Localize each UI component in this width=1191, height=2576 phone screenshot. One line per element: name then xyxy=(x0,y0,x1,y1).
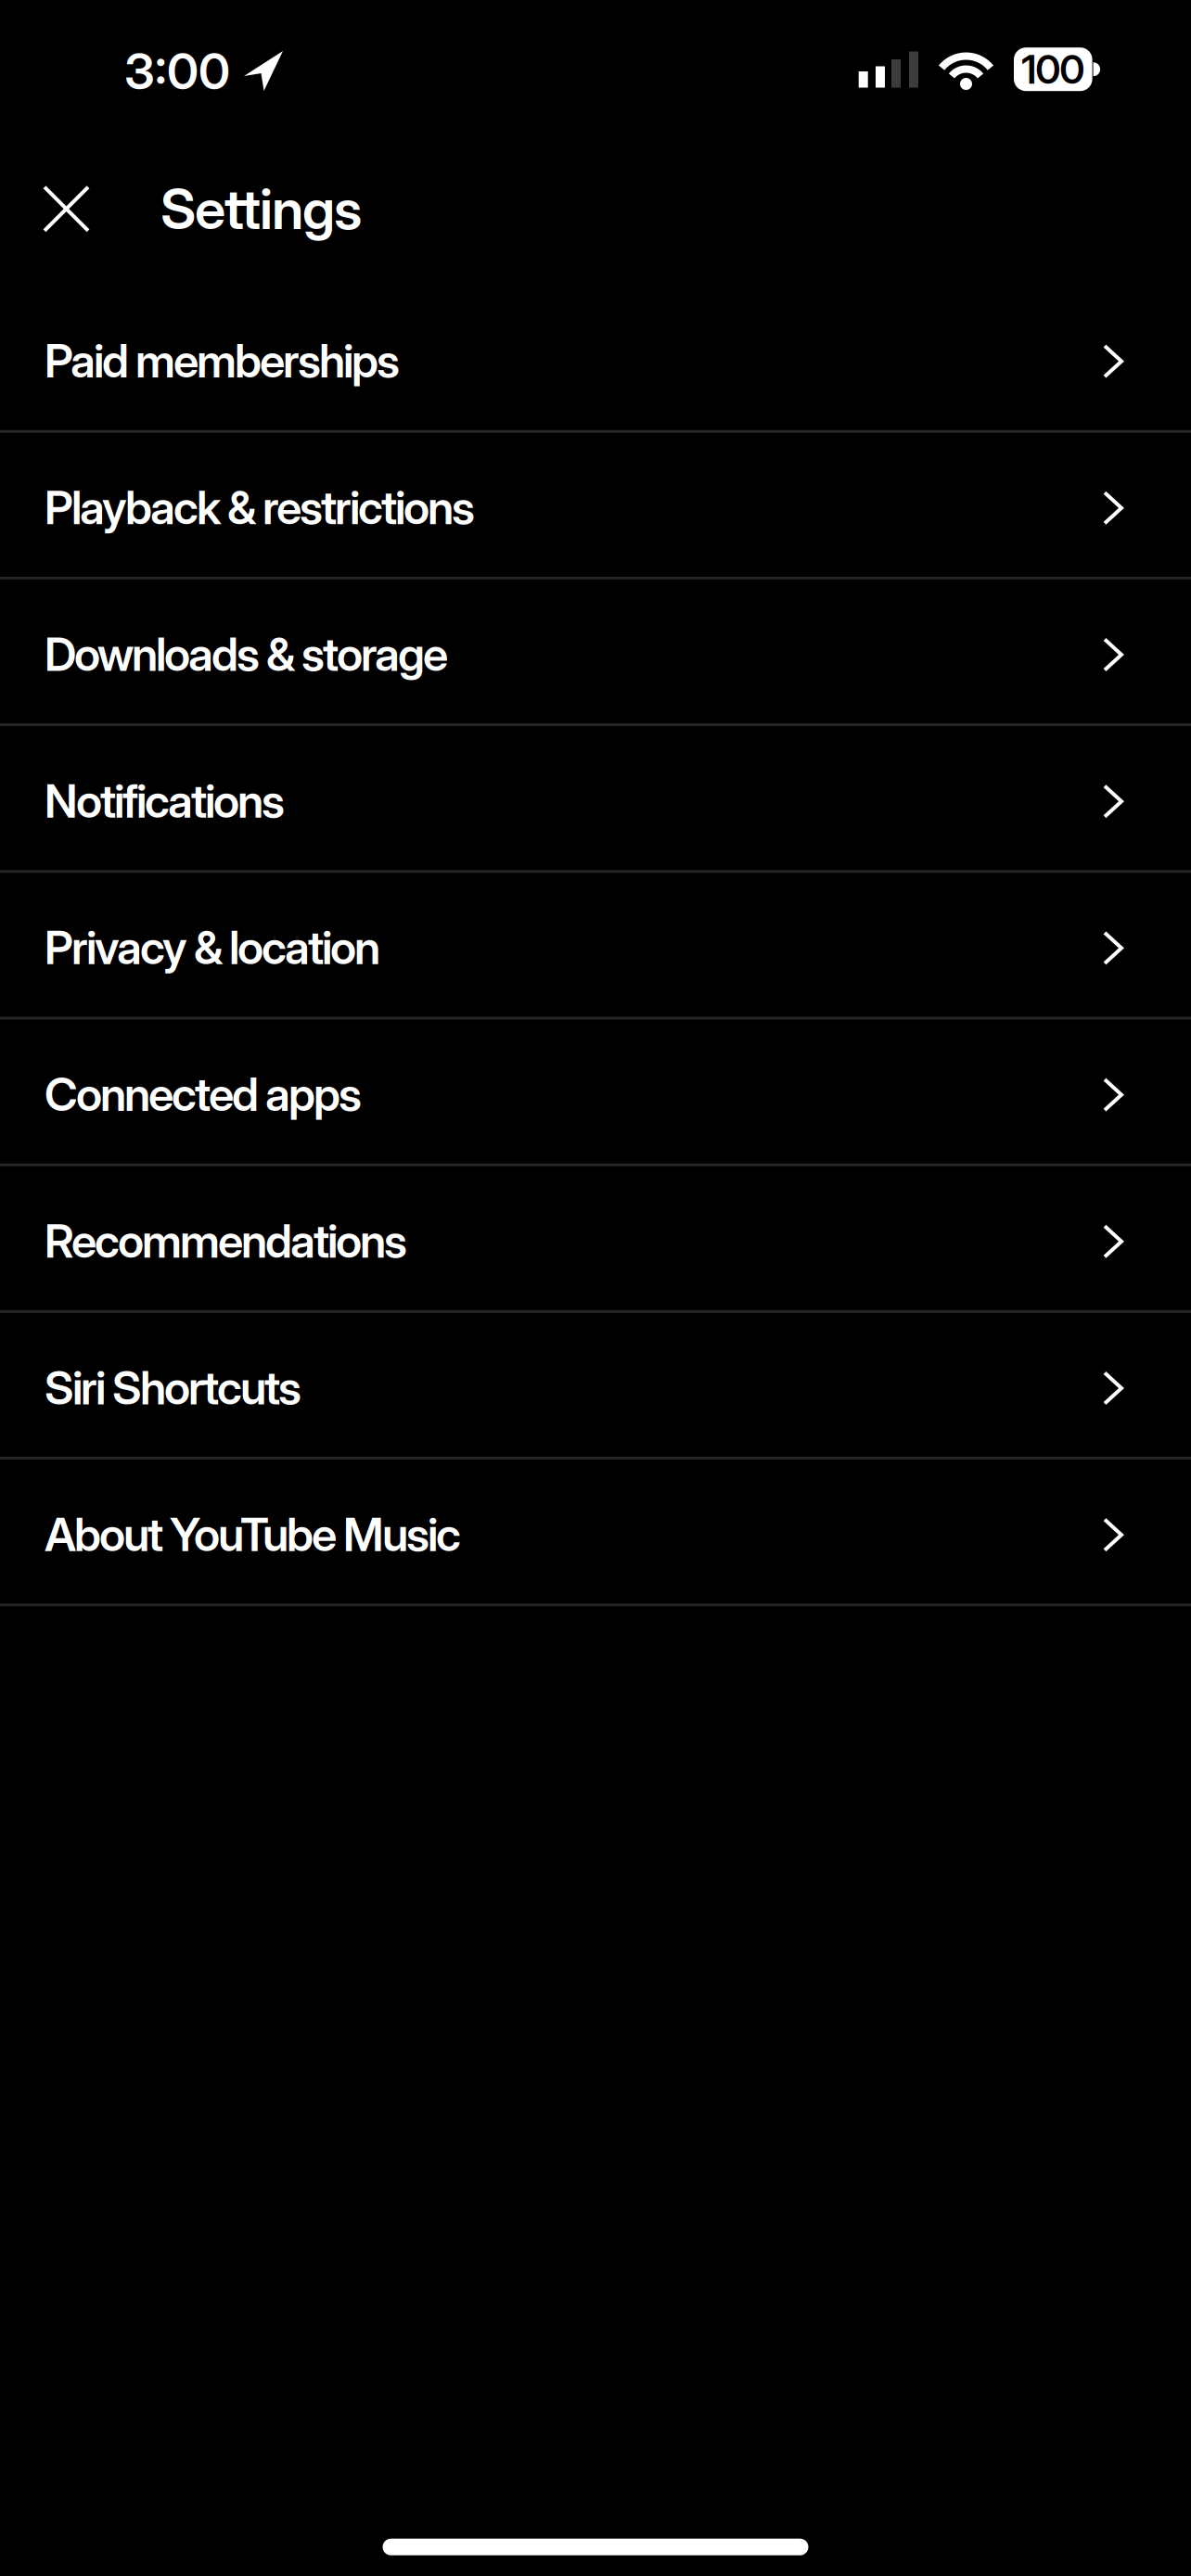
staticText: 3:00 xyxy=(124,41,230,101)
staticText: Playback & restrictions xyxy=(45,480,475,535)
staticText: About YouTube Music xyxy=(45,1507,461,1562)
staticText: Downloads & storage xyxy=(45,627,448,682)
button[interactable]: Privacy & location xyxy=(0,873,1191,1017)
staticText: Recommendations xyxy=(45,1213,407,1269)
button[interactable]: About YouTube Music xyxy=(0,1460,1191,1604)
staticText: Siri Shortcuts xyxy=(45,1360,301,1415)
button[interactable]: Recommendations xyxy=(0,1166,1191,1310)
button[interactable]: Connected apps xyxy=(0,1020,1191,1163)
staticText: Privacy & location xyxy=(45,920,380,975)
staticText: Notifications xyxy=(45,773,285,829)
staticText: Connected apps xyxy=(45,1067,362,1122)
staticText: Paid memberships xyxy=(45,333,400,389)
button[interactable]: Siri Shortcuts xyxy=(0,1313,1191,1457)
staticText: Settings xyxy=(160,175,362,243)
staticText: 100 xyxy=(1022,45,1085,93)
button[interactable]: Downloads & storage xyxy=(0,579,1191,723)
button[interactable]: Playback & restrictions xyxy=(0,433,1191,577)
button[interactable]: Notifications xyxy=(0,726,1191,870)
button[interactable]: Close xyxy=(43,185,90,232)
button[interactable]: Paid memberships xyxy=(0,286,1191,430)
